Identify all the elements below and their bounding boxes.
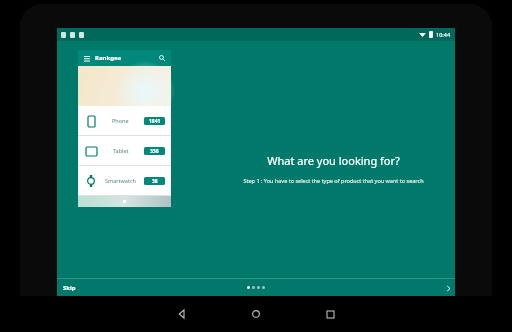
button[interactable]: Search (157, 53, 167, 63)
staticText: 336 (150, 148, 159, 155)
staticText: Smartwatch (105, 177, 136, 184)
staticText: Phone (112, 117, 129, 124)
button[interactable]: Recents (312, 296, 348, 332)
staticText: What are you looking for? (267, 153, 400, 168)
button[interactable]: Skip (57, 281, 82, 295)
staticText: Tablet (113, 147, 129, 154)
staticText: Rankgea (95, 54, 122, 62)
staticText: 38 (152, 178, 158, 185)
staticText: Skip (63, 284, 76, 292)
button[interactable]: Menu (82, 53, 92, 63)
staticText: 10:44 (436, 31, 451, 38)
button[interactable]: Phone (78, 106, 171, 135)
button[interactable]: Back (164, 296, 200, 332)
button[interactable]: Smartwatch (78, 166, 171, 195)
button[interactable]: Home (238, 296, 274, 332)
staticText: 1841 (149, 118, 161, 125)
staticText: Step 1 : You have to select the type of … (243, 177, 424, 184)
button[interactable]: Tablet (78, 136, 171, 165)
button[interactable]: Next (441, 281, 455, 295)
